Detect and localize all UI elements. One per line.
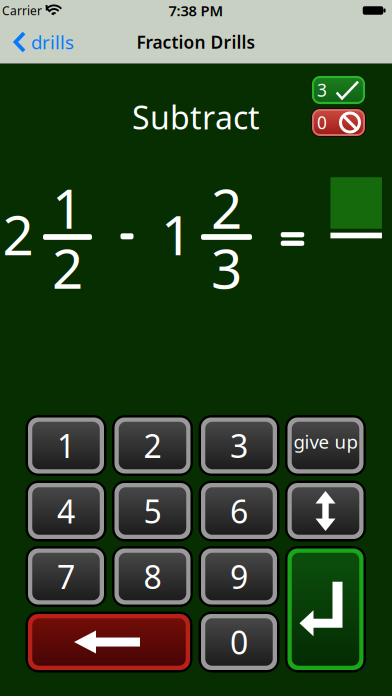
staticText: 8: [143, 555, 161, 598]
staticText: Fraction Drills: [136, 30, 255, 53]
button[interactable]: 1: [25, 415, 106, 476]
staticText: 2: [143, 424, 161, 467]
staticText: 9: [230, 555, 248, 598]
staticText: 7:38 PM: [168, 1, 223, 20]
staticText: 0: [230, 621, 248, 663]
staticText: 3: [317, 78, 327, 101]
button[interactable]: 3: [198, 415, 279, 476]
button[interactable]: 5: [112, 480, 193, 541]
staticText: 2: [52, 231, 83, 304]
button[interactable]: 7: [25, 546, 106, 607]
button[interactable]: 9: [198, 546, 279, 607]
staticText: 3: [211, 231, 242, 304]
staticText: drills: [31, 30, 74, 54]
button[interactable]: 0: [311, 108, 366, 137]
staticText: 7: [57, 555, 75, 598]
staticText: give up: [293, 429, 357, 454]
staticText: Subtract: [132, 96, 260, 138]
staticText: 2: [2, 198, 33, 270]
button[interactable]: give up: [285, 415, 366, 476]
button[interactable]: 2: [112, 415, 193, 476]
button[interactable]: [285, 480, 366, 541]
button[interactable]: [25, 611, 192, 672]
staticText: 2: [211, 171, 242, 244]
button[interactable]: 4: [25, 480, 106, 541]
staticText: 1: [52, 171, 83, 244]
staticText: 1: [161, 198, 192, 270]
staticText: Carrier: [2, 2, 42, 18]
button[interactable]: 0: [198, 611, 279, 672]
staticText: 5: [143, 490, 161, 532]
button[interactable]: drills: [14, 30, 74, 54]
button[interactable]: [285, 546, 366, 672]
staticText: 6: [230, 490, 248, 532]
button[interactable]: 3: [311, 75, 366, 105]
staticText: 3: [230, 424, 248, 467]
staticText: 1: [57, 424, 75, 467]
button[interactable]: 8: [112, 546, 193, 607]
staticText: 4: [57, 490, 75, 532]
staticText: 0: [317, 111, 327, 134]
button[interactable]: 6: [198, 480, 279, 541]
